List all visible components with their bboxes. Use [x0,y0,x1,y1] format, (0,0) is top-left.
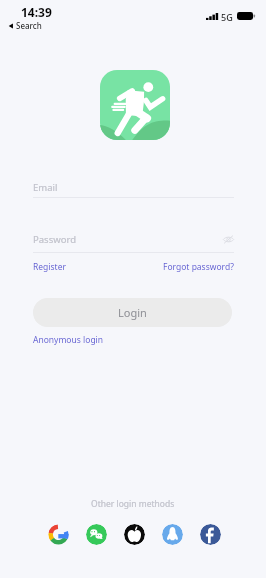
staticText: 5G [221,11,233,23]
button[interactable]: Forgot password? [163,261,234,273]
button[interactable]: Register [33,261,66,273]
staticText: Forgot password? [163,261,234,273]
staticText: Anonymous login [33,334,104,346]
staticText: Search [16,20,42,31]
staticText: Login [118,305,147,320]
staticText: 14:39 [21,4,52,20]
button[interactable]: Back to Search [8,20,42,31]
button[interactable]: Sign in with Facebook [200,524,221,545]
staticText: Other login methods [91,498,175,510]
staticText: Register [33,261,66,273]
button[interactable]: Anonymous login [33,334,104,346]
staticText: Password [33,233,76,246]
button[interactable]: Sign in with Apple [124,524,145,545]
button[interactable]: Sign in with Google [48,524,69,545]
button[interactable]: Sign in with WeChat [86,524,107,545]
button[interactable]: Sign in with QQ [162,524,183,545]
button[interactable]: Login [33,298,232,327]
button[interactable]: Show password [222,233,235,246]
staticText: Email [33,181,58,194]
